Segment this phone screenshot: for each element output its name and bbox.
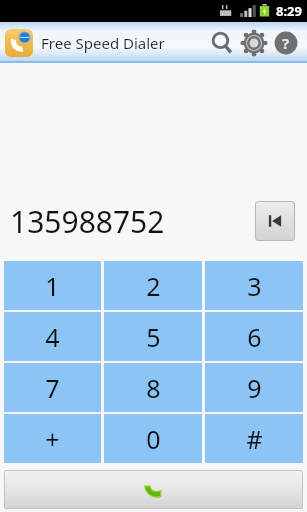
- button[interactable]: #: [205, 414, 303, 463]
- button[interactable]: 1: [4, 261, 101, 310]
- staticText: 3: [247, 269, 262, 303]
- staticText: 5: [146, 320, 161, 354]
- staticText: ?: [282, 33, 290, 53]
- button[interactable]: Call: [4, 470, 303, 509]
- staticText: #: [246, 422, 263, 456]
- button[interactable]: Search: [209, 30, 235, 56]
- button[interactable]: 3: [205, 261, 303, 310]
- button[interactable]: App icon: [5, 29, 33, 57]
- button[interactable]: 2: [104, 261, 202, 310]
- button[interactable]: 0: [104, 414, 202, 463]
- staticText: 8:29: [276, 2, 302, 20]
- staticText: 6: [247, 320, 262, 354]
- staticText: 7: [45, 371, 60, 405]
- button[interactable]: 5: [104, 312, 202, 361]
- staticText: +: [45, 422, 60, 456]
- staticText: 1: [45, 269, 60, 303]
- staticText: 0: [146, 422, 161, 456]
- staticText: 2: [146, 269, 161, 303]
- button[interactable]: Settings: [241, 30, 267, 56]
- button[interactable]: 6: [205, 312, 303, 361]
- button[interactable]: +: [4, 414, 101, 463]
- button[interactable]: 9: [205, 363, 303, 412]
- button[interactable]: 7: [4, 363, 101, 412]
- staticText: 135988752: [10, 201, 165, 242]
- button[interactable]: Help: [273, 30, 299, 56]
- button[interactable]: Backspace: [255, 201, 295, 241]
- button[interactable]: 8: [104, 363, 202, 412]
- staticText: 9: [247, 371, 262, 405]
- staticText: Free Speed Dialer: [41, 33, 165, 53]
- staticText: 4: [45, 320, 60, 354]
- staticText: 8: [146, 371, 161, 405]
- button[interactable]: 4: [4, 312, 101, 361]
